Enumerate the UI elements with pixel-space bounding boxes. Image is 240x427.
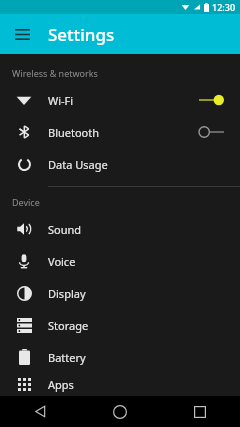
button[interactable]: Home xyxy=(80,396,160,427)
button[interactable]: Voice xyxy=(0,245,240,277)
button[interactable]: Battery xyxy=(0,341,240,373)
staticText: Data Usage xyxy=(48,157,240,172)
button[interactable]: Bluetooth xyxy=(0,116,240,148)
button[interactable]: Toggle off xyxy=(197,124,225,140)
button[interactable]: Storage xyxy=(0,309,240,341)
button[interactable]: Display xyxy=(0,277,240,309)
staticText: Apps xyxy=(48,377,240,392)
button[interactable]: Open navigation drawer xyxy=(8,20,36,48)
staticText: Bluetooth xyxy=(48,125,196,140)
button[interactable]: Back xyxy=(0,396,80,427)
button[interactable]: Recent apps xyxy=(160,396,240,427)
staticText: Sound xyxy=(48,222,240,237)
button[interactable]: Sound xyxy=(0,213,240,245)
staticText: Device xyxy=(12,196,40,208)
staticText: 12:30 xyxy=(212,1,236,13)
button[interactable]: Data Usage xyxy=(0,148,240,180)
staticText: Wi-Fi xyxy=(48,93,196,108)
staticText: Voice xyxy=(48,254,240,269)
button[interactable]: Toggle on xyxy=(197,92,225,108)
staticText: Battery xyxy=(48,350,240,365)
button[interactable]: Wi-Fi xyxy=(0,84,240,116)
staticText: Wireless & networks xyxy=(12,67,98,79)
staticText: Storage xyxy=(48,318,240,333)
button[interactable]: Apps xyxy=(0,373,240,396)
staticText: Display xyxy=(48,286,240,301)
staticText: Settings xyxy=(48,23,115,46)
